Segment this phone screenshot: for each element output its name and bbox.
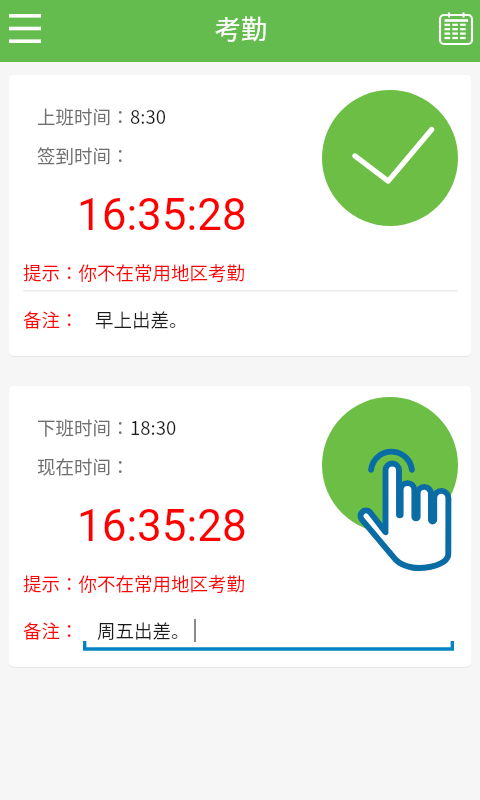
staticText: 16:35:28 — [77, 189, 247, 241]
staticText: 早上出差。 — [95, 306, 188, 333]
staticText: 考勤 — [215, 9, 268, 47]
staticText: 下班时间： — [37, 414, 130, 441]
staticText: 提示：你不在常用地区考勤 — [23, 570, 246, 597]
staticText: 签到时间： — [37, 142, 130, 169]
staticText: 现在时间： — [37, 453, 130, 480]
staticText: 备注： — [23, 617, 79, 644]
button[interactable]: 上班时间： — [9, 75, 471, 356]
staticText: 16:35:28 — [77, 500, 247, 552]
staticText: 备注： — [23, 306, 79, 333]
button[interactable]: Menu — [0, 4, 50, 58]
staticText: 周五出差。 — [97, 617, 190, 644]
staticText: 提示：你不在常用地区考勤 — [23, 259, 246, 286]
staticText: 8:30 — [130, 103, 166, 130]
staticText: 上班时间： — [37, 103, 130, 130]
button[interactable]: Checked in — [322, 90, 458, 226]
button[interactable]: Calendar — [430, 4, 480, 58]
button[interactable]: Check out — [322, 397, 458, 533]
button[interactable]: 下班时间： — [9, 386, 471, 667]
staticText: 18:30 — [130, 414, 177, 441]
